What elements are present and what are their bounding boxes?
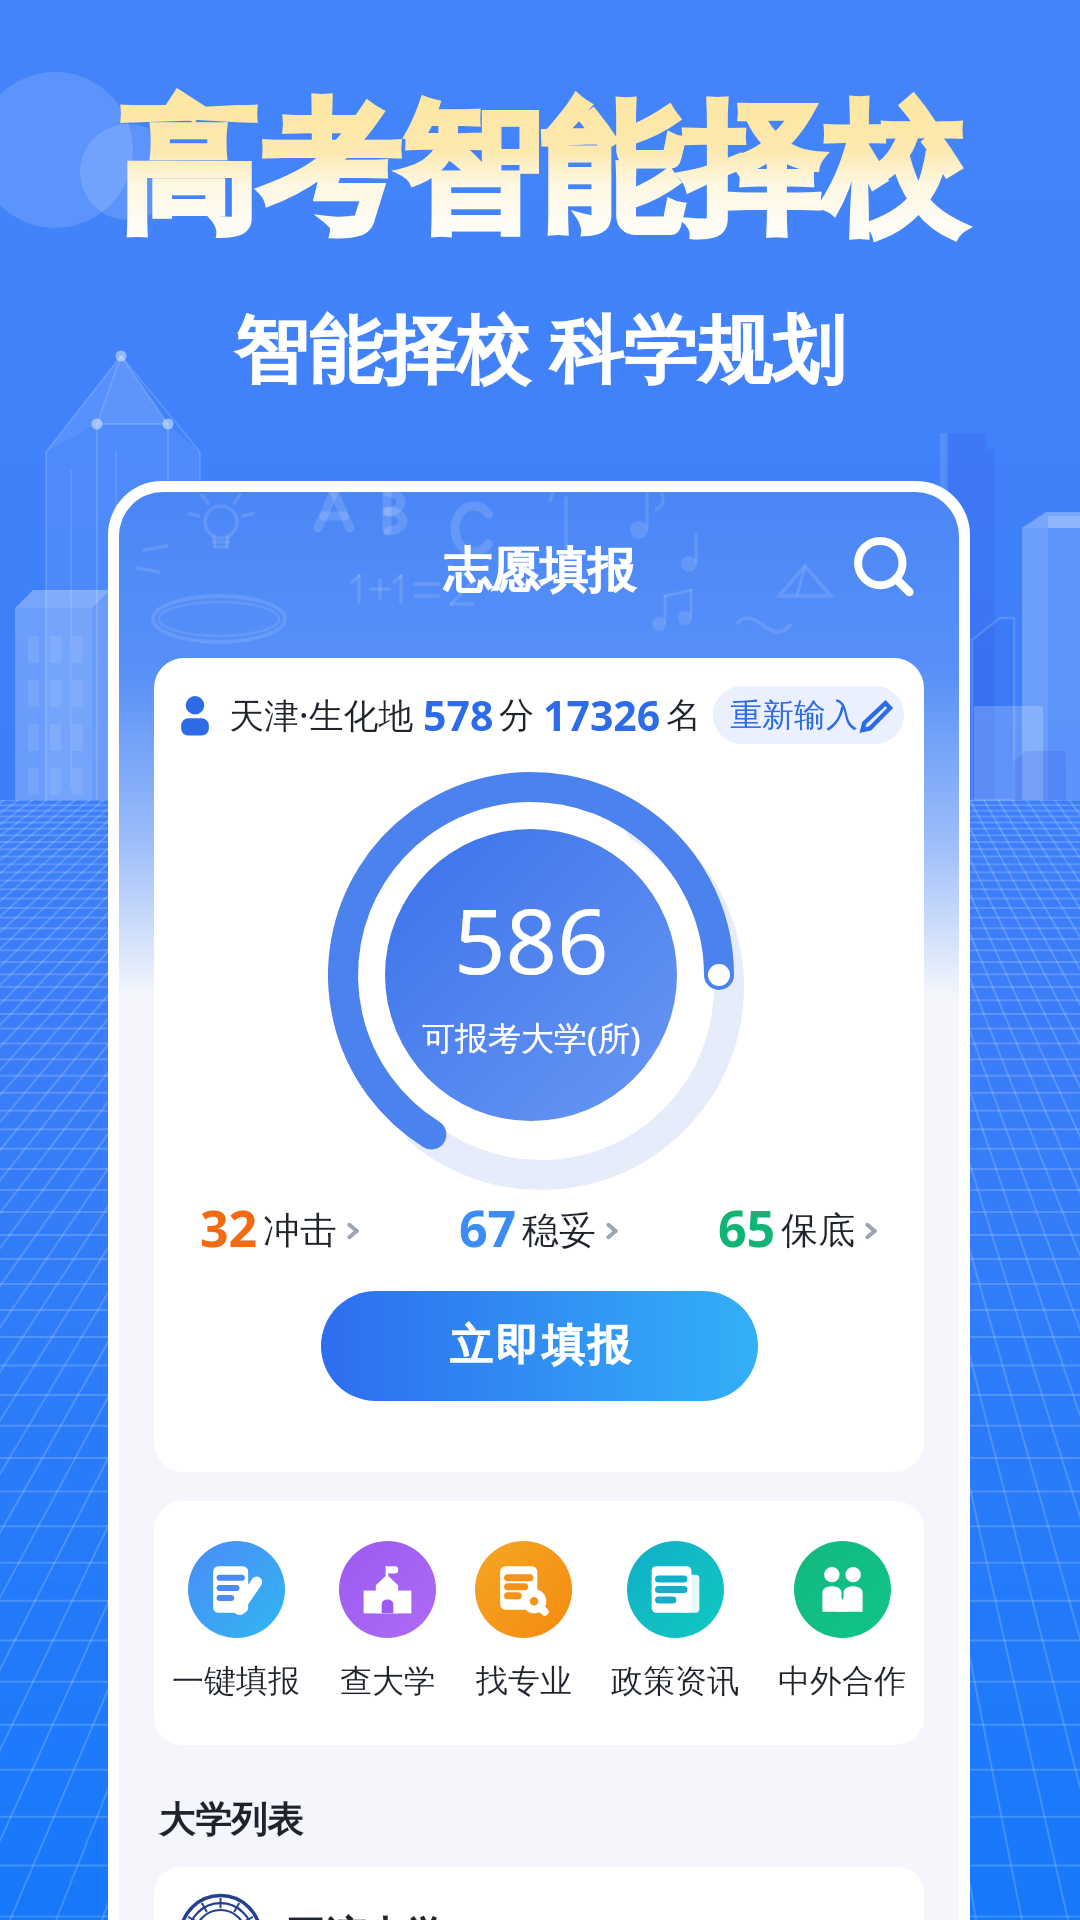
button[interactable]: 政策资讯: [607, 1541, 743, 1701]
button[interactable]: 找专业: [471, 1541, 576, 1701]
button[interactable]: 65: [718, 1194, 884, 1262]
button[interactable]: 一键填报: [168, 1541, 304, 1701]
button[interactable]: 重新输入: [713, 686, 904, 744]
staticText: 大学列表: [159, 1797, 303, 1842]
staticText: 67: [459, 1194, 517, 1262]
button[interactable]: 中外合作: [774, 1541, 910, 1701]
staticText: 立即填报: [448, 1319, 632, 1373]
staticText: 32: [200, 1194, 258, 1262]
staticText: 586: [454, 878, 609, 1001]
button[interactable]: 同济大学: [154, 1867, 924, 1920]
staticText: 查大学: [340, 1661, 436, 1701]
staticText: 稳妥: [522, 1207, 596, 1254]
staticText: 17326: [543, 687, 661, 743]
button[interactable]: 查大学: [335, 1541, 440, 1701]
staticText: 可报考大学(所): [422, 1015, 641, 1060]
staticText: 一键填报: [172, 1661, 300, 1701]
staticText: 智能择校 科学规划: [234, 297, 846, 398]
staticText: 65: [718, 1194, 776, 1262]
staticText: 重新输入: [730, 695, 858, 735]
button[interactable]: 立即填报: [321, 1291, 758, 1401]
staticText: 政策资讯: [611, 1661, 739, 1701]
staticText: 名: [666, 693, 701, 737]
staticText: 578: [423, 687, 494, 743]
staticText: 分: [499, 693, 534, 737]
staticText: 高考智能择校: [117, 82, 963, 260]
staticText: 天津·生化地: [229, 691, 414, 739]
button[interactable]: Search: [847, 532, 921, 606]
button[interactable]: 32: [200, 1194, 366, 1262]
button[interactable]: 67: [459, 1194, 625, 1262]
staticText: 找专业: [476, 1661, 572, 1701]
staticText: 保底: [781, 1207, 855, 1254]
staticText: 志愿填报: [443, 541, 635, 601]
staticText: 中外合作: [778, 1661, 906, 1701]
staticText: 冲击: [263, 1207, 337, 1254]
staticText: 同济大学: [285, 1911, 445, 1920]
